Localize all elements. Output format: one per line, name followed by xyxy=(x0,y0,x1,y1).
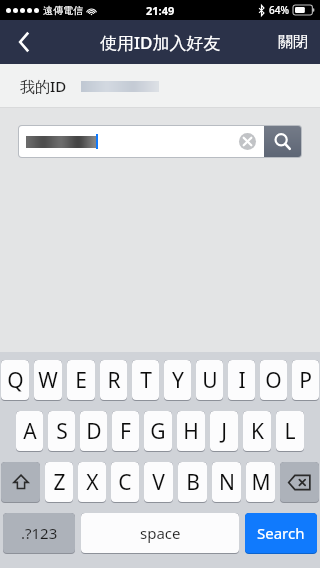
staticText: 21:49 xyxy=(146,3,175,18)
staticText: W xyxy=(38,366,58,395)
button[interactable]: P xyxy=(292,360,319,400)
staticText: U xyxy=(202,366,218,395)
button[interactable]: O xyxy=(260,360,287,400)
button[interactable]: Search xyxy=(245,513,317,553)
button[interactable]: H xyxy=(177,411,205,451)
button[interactable]: N xyxy=(212,462,241,502)
button[interactable]: W xyxy=(34,360,62,400)
button[interactable]: J xyxy=(210,411,238,451)
button[interactable]: D xyxy=(80,411,107,451)
button[interactable]: F xyxy=(112,411,139,451)
button[interactable]: I xyxy=(228,360,255,400)
button[interactable]: Clear text xyxy=(19,126,264,157)
staticText: K xyxy=(251,417,264,446)
staticText: N xyxy=(219,468,235,497)
button[interactable]: Shift xyxy=(1,462,40,502)
button[interactable]: Search xyxy=(264,126,301,157)
staticText: J xyxy=(221,417,227,446)
button[interactable]: L xyxy=(276,411,304,451)
staticText: S xyxy=(56,417,68,446)
staticText: E xyxy=(75,366,87,395)
button[interactable]: A xyxy=(16,411,43,451)
button[interactable]: C xyxy=(111,462,139,502)
staticText: X xyxy=(86,468,99,497)
button[interactable]: Clear text xyxy=(239,133,256,150)
staticText: .?123 xyxy=(21,523,58,543)
staticText: M xyxy=(251,468,271,497)
button[interactable]: .?123 xyxy=(3,513,75,553)
button[interactable]: space xyxy=(81,513,239,553)
button[interactable]: X xyxy=(78,462,106,502)
button[interactable]: Q xyxy=(1,360,29,400)
button[interactable]: M xyxy=(246,462,275,502)
button[interactable]: V xyxy=(144,462,173,502)
staticText: space xyxy=(140,523,181,543)
staticText: T xyxy=(140,366,152,395)
button[interactable]: G xyxy=(144,411,172,451)
staticText: I xyxy=(238,366,246,395)
button[interactable]: Backspace xyxy=(280,462,319,502)
staticText: Search xyxy=(257,523,305,543)
staticText: D xyxy=(86,417,102,446)
button[interactable]: E xyxy=(67,360,95,400)
staticText: L xyxy=(284,417,296,446)
staticText: O xyxy=(265,366,282,395)
staticText: 我的ID xyxy=(20,76,67,96)
staticText: 遠傳電信 xyxy=(43,4,83,17)
staticText: Q xyxy=(7,366,24,395)
button[interactable]: T xyxy=(132,360,159,400)
staticText: 使用ID加入好友 xyxy=(100,31,221,54)
staticText: V xyxy=(152,468,165,497)
staticText: Y xyxy=(172,366,184,395)
staticText: H xyxy=(183,417,199,446)
button[interactable]: Back xyxy=(0,20,48,64)
button[interactable]: 關閉 xyxy=(266,20,320,64)
staticText: B xyxy=(186,468,200,497)
staticText: 64% xyxy=(269,3,289,17)
button[interactable]: Z xyxy=(45,462,73,502)
staticText: R xyxy=(107,366,121,395)
button[interactable]: K xyxy=(243,411,271,451)
staticText: Z xyxy=(53,468,66,497)
button[interactable]: Y xyxy=(164,360,191,400)
staticText: G xyxy=(150,417,166,446)
button[interactable]: U xyxy=(196,360,223,400)
staticText: F xyxy=(120,417,131,446)
staticText: 關閉 xyxy=(278,33,308,52)
staticText: P xyxy=(299,366,312,395)
button[interactable]: B xyxy=(178,462,207,502)
staticText: C xyxy=(118,468,132,497)
staticText: A xyxy=(23,417,37,446)
button[interactable]: S xyxy=(48,411,75,451)
button[interactable]: R xyxy=(100,360,127,400)
